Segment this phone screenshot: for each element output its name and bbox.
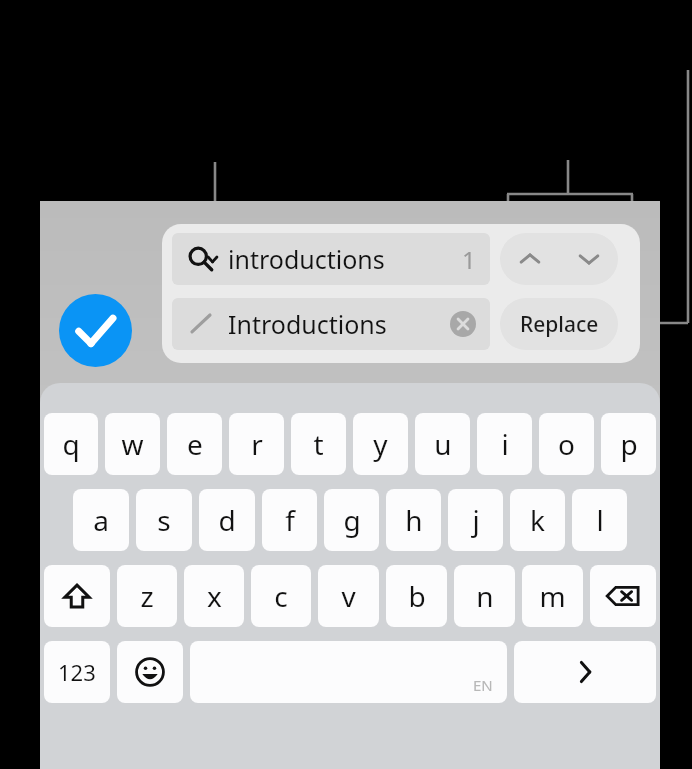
button[interactable]: y [353, 413, 408, 475]
staticText: k [530, 501, 545, 539]
button[interactable]: Space [190, 641, 507, 703]
staticText: l [596, 501, 604, 539]
button[interactable]: Emoji [117, 641, 183, 703]
staticText: EN [473, 675, 493, 695]
button[interactable]: f [262, 489, 317, 551]
staticText: o [558, 425, 575, 463]
staticText: t [313, 425, 324, 463]
staticText: s [157, 501, 171, 539]
button[interactable]: d [199, 489, 255, 551]
staticText: y [373, 425, 388, 463]
staticText: n [476, 577, 494, 615]
button[interactable]: Next result [559, 233, 618, 285]
button[interactable]: z [117, 565, 177, 627]
button[interactable]: b [386, 565, 447, 627]
button[interactable]: Previous result [500, 233, 559, 285]
staticText: Replace [520, 310, 599, 339]
button[interactable]: 123 [44, 641, 110, 703]
button[interactable]: Backspace [590, 565, 656, 627]
button[interactable]: l [572, 489, 627, 551]
staticText: x [207, 577, 222, 615]
staticText: g [343, 501, 361, 539]
button[interactable]: m [522, 565, 583, 627]
button[interactable]: r [229, 413, 284, 475]
staticText: e [187, 425, 203, 463]
staticText: q [62, 425, 80, 463]
staticText: p [620, 425, 638, 463]
button[interactable]: n [454, 565, 515, 627]
button[interactable]: p [601, 413, 656, 475]
staticText: d [218, 501, 236, 539]
button[interactable]: Replace [500, 298, 618, 350]
button[interactable]: c [251, 565, 311, 627]
staticText: h [405, 501, 423, 539]
staticText: b [408, 577, 426, 615]
button[interactable]: h [386, 489, 441, 551]
staticText: introductions [228, 242, 385, 276]
staticText: r [251, 425, 263, 463]
staticText: i [501, 425, 509, 463]
button[interactable]: u [415, 413, 470, 475]
staticText: c [274, 577, 288, 615]
button[interactable]: w [105, 413, 160, 475]
staticText: z [140, 577, 154, 615]
button[interactable]: j [448, 489, 503, 551]
button[interactable]: Shift [44, 565, 110, 627]
button[interactable]: Clear text [450, 311, 476, 337]
button[interactable]: Enter [514, 641, 656, 703]
button[interactable]: a [73, 489, 129, 551]
button[interactable]: g [324, 489, 379, 551]
staticText: 1 [462, 243, 476, 276]
button[interactable]: i [477, 413, 532, 475]
staticText: w [121, 425, 144, 463]
staticText: j [472, 501, 480, 539]
button[interactable]: s [136, 489, 192, 551]
button[interactable]: x [184, 565, 244, 627]
button[interactable]: introductions [172, 233, 490, 285]
button[interactable]: t [291, 413, 346, 475]
staticText: v [341, 577, 356, 615]
button[interactable]: q [44, 413, 98, 475]
button[interactable]: Introductions [172, 298, 490, 350]
button[interactable]: Done [59, 294, 132, 367]
button[interactable]: e [167, 413, 222, 475]
staticText: Introductions [228, 307, 387, 341]
staticText: m [539, 577, 566, 615]
button[interactable]: v [318, 565, 379, 627]
staticText: 123 [58, 657, 96, 687]
button[interactable]: k [510, 489, 565, 551]
staticText: f [285, 501, 295, 539]
button[interactable]: o [539, 413, 594, 475]
staticText: u [434, 425, 452, 463]
staticText: a [93, 501, 109, 539]
